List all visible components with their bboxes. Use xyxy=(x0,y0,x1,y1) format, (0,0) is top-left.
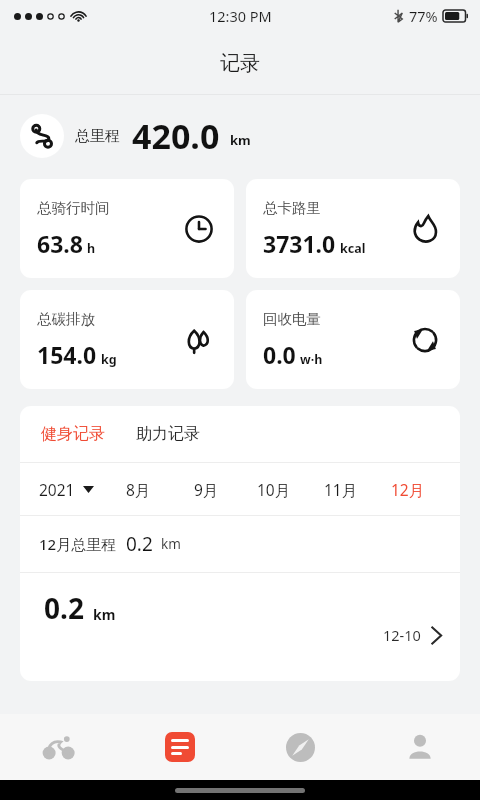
staticText: 11月 xyxy=(324,479,358,500)
staticText: 记录 xyxy=(220,51,260,76)
staticText: 总卡路里 xyxy=(263,199,321,217)
staticText: 0.0 xyxy=(263,339,296,370)
staticText: 总里程 xyxy=(75,127,120,146)
button[interactable]: 12月 xyxy=(374,479,441,500)
staticText: km xyxy=(230,131,251,149)
staticText: 12月总里程 xyxy=(39,534,117,554)
staticText: kcal xyxy=(340,240,366,257)
button[interactable]: 记录 xyxy=(120,714,240,780)
staticText: w·h xyxy=(300,351,323,368)
staticText: 154.0 xyxy=(37,339,97,370)
staticText: 10月 xyxy=(257,479,291,500)
staticText: 0.2 xyxy=(44,589,84,627)
button[interactable]: 我的 xyxy=(360,714,480,780)
button[interactable]: 健身记录 xyxy=(39,418,107,450)
staticText: 3731.0 xyxy=(263,228,336,259)
button[interactable]: 总卡路里 xyxy=(246,179,460,278)
staticText: 助力记录 xyxy=(136,424,200,444)
button[interactable]: 0.2 xyxy=(20,573,460,655)
staticText: km xyxy=(93,605,116,624)
staticText: 12:30 PM xyxy=(209,6,272,26)
button[interactable]: 11月 xyxy=(307,479,374,500)
staticText: 总骑行时间 xyxy=(37,199,110,217)
button[interactable]: 12月总里程 xyxy=(39,516,460,572)
button[interactable]: 10月 xyxy=(240,479,307,500)
staticText: 12-10 xyxy=(383,625,421,645)
button[interactable]: 发现 xyxy=(240,714,360,780)
staticText: 420.0 xyxy=(132,113,220,159)
staticText: kg xyxy=(101,351,117,368)
staticText: 8月 xyxy=(126,479,151,500)
button[interactable]: 骑行 xyxy=(0,714,120,780)
staticText: 回收电量 xyxy=(263,310,321,328)
button[interactable]: 9月 xyxy=(172,479,240,500)
staticText: 77% xyxy=(409,6,438,26)
button[interactable]: 助力记录 xyxy=(134,418,202,450)
button[interactable]: 回收电量 xyxy=(246,290,460,389)
staticText: 63.8 xyxy=(37,228,83,259)
button[interactable]: 总骑行时间 xyxy=(20,179,234,278)
staticText: 总碳排放 xyxy=(37,310,95,328)
staticText: km xyxy=(161,535,181,553)
staticText: 12月 xyxy=(391,479,425,500)
staticText: 2021 xyxy=(39,479,75,500)
button[interactable]: 8月 xyxy=(104,479,172,500)
staticText: 健身记录 xyxy=(41,424,105,444)
staticText: 0.2 xyxy=(126,531,153,557)
button[interactable]: 总碳排放 xyxy=(20,290,234,389)
button[interactable]: 2021 xyxy=(39,479,94,500)
staticText: h xyxy=(87,240,96,257)
staticText: 9月 xyxy=(194,479,219,500)
